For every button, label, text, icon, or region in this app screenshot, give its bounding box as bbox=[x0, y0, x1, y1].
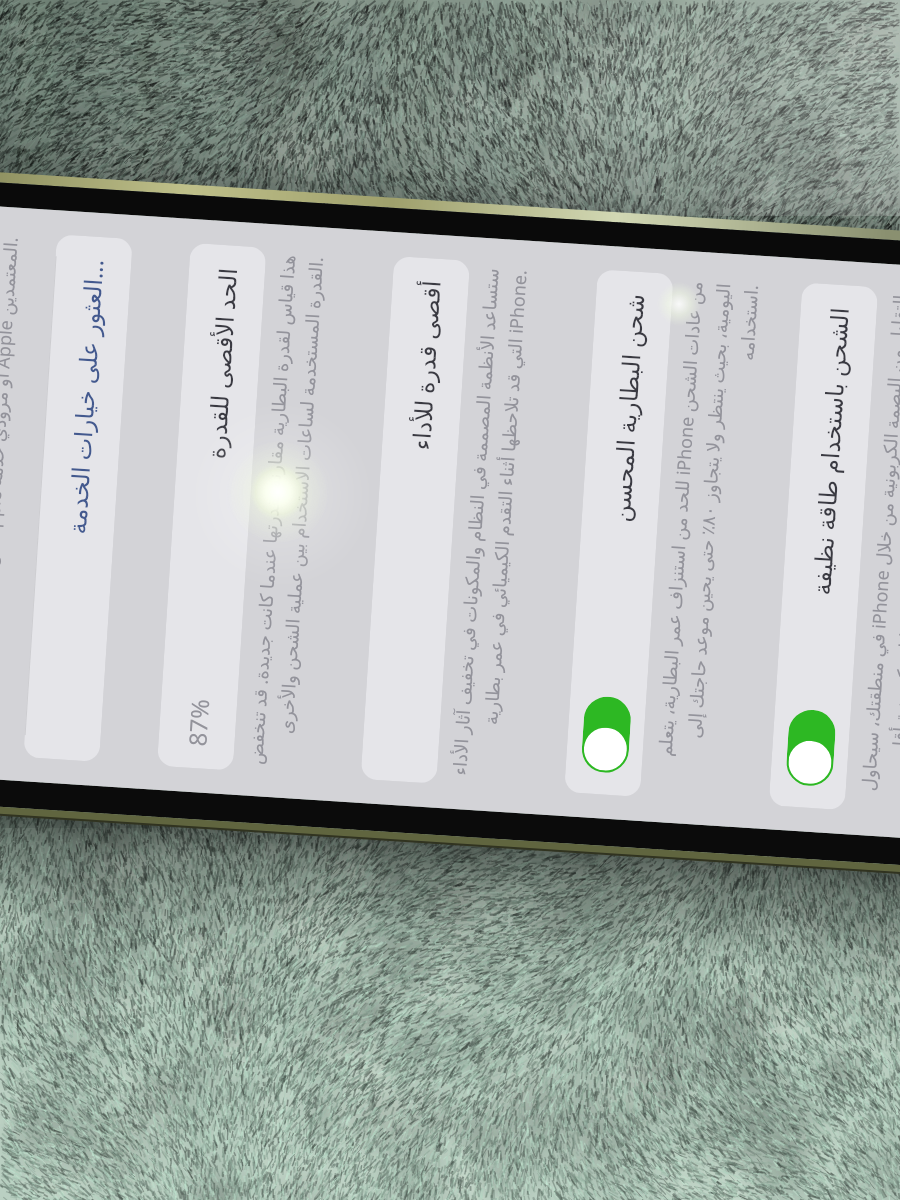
staticText: أقصى قدرة للأداء bbox=[404, 279, 448, 451]
staticText: في منطقتك، سيحاول iPhone التقليل من البص… bbox=[855, 294, 900, 808]
button[interactable]: الشحن باستخدام طاقة نظيفة bbox=[769, 282, 878, 810]
staticText: للحد من استنزاف عمر البطارية، يتعلم iPho… bbox=[650, 281, 764, 797]
button[interactable]: الحد الأقصى للقدرة bbox=[157, 243, 267, 771]
staticText: 87% bbox=[180, 697, 216, 747]
button[interactable]: Toggle bbox=[785, 708, 837, 787]
staticText: العثور على خيارات الخدمة... bbox=[60, 257, 110, 535]
staticText: هذا قياس لقدرة البطارية مقارنة بقدرتها ع… bbox=[243, 254, 329, 769]
button[interactable]: شحن البطارية المحسن bbox=[564, 269, 674, 797]
button[interactable]: العثور على خيارات الخدمة... bbox=[23, 234, 133, 762]
staticText: الشحن باستخدام طاقة نظيفة bbox=[804, 306, 856, 596]
staticText: الحد الأقصى للقدرة bbox=[199, 266, 244, 460]
staticText: شحن البطارية المحسن bbox=[604, 292, 651, 523]
staticText: ستساعد الأنظمة المصممة في النظام والمكون… bbox=[447, 267, 533, 782]
button[interactable]: Toggle bbox=[580, 695, 632, 774]
staticText: من قبل Apple أو مزودي خدمة Apple المعتمد… bbox=[0, 236, 24, 749]
button[interactable]: أقصى قدرة للأداء bbox=[360, 256, 470, 784]
